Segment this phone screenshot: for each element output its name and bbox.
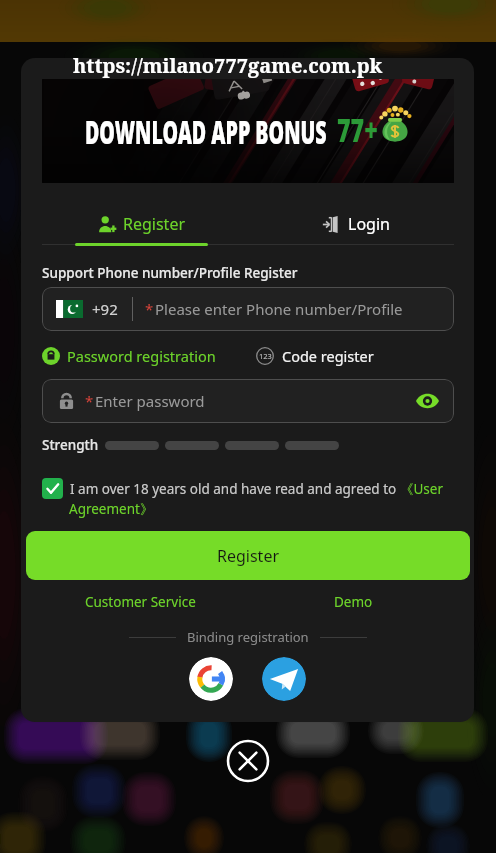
staticText: 《User [400, 480, 444, 498]
staticText: * [85, 391, 94, 411]
button[interactable]: Register [26, 531, 470, 580]
staticText: Register [123, 213, 186, 235]
button[interactable]: * [42, 379, 454, 423]
button[interactable]: Login [248, 203, 454, 244]
staticText: * [145, 299, 154, 319]
staticText: Agreement》 [69, 500, 154, 518]
button[interactable]: I am over 18 years old [42, 478, 63, 499]
staticText: Code register [282, 346, 374, 366]
button[interactable]: Sign up with Google [189, 657, 233, 701]
staticText: https://milano777game.com.pk [73, 52, 383, 79]
staticText: Customer Service [85, 593, 196, 611]
staticText: +92 [92, 299, 118, 319]
staticText: Please enter Phone number/Profile [155, 299, 403, 319]
button[interactable]: Agreement》 [69, 500, 154, 518]
button[interactable]: Download app bonus banner [42, 79, 454, 183]
staticText: Strength [42, 436, 99, 454]
staticText: 77+ [337, 108, 378, 151]
button[interactable]: Customer Service [85, 593, 196, 611]
button[interactable]: +92 [42, 287, 454, 331]
button[interactable]: Close [226, 739, 270, 783]
staticText: I am over 18 years old and have read and… [70, 480, 400, 498]
button[interactable]: Demo [334, 593, 373, 611]
button[interactable]: Register [42, 203, 248, 244]
button[interactable]: 123 [256, 346, 374, 366]
button[interactable]: Password registration [42, 346, 216, 366]
staticText: Register [217, 545, 280, 567]
staticText: Support Phone number/Profile Register [42, 264, 298, 282]
staticText: DOWNLOAD APP BONUS [85, 109, 327, 153]
staticText: 123 [259, 351, 272, 361]
staticText: Password registration [67, 346, 216, 366]
staticText: Enter password [95, 391, 205, 411]
staticText: Binding registration [187, 628, 309, 646]
button[interactable]: Show password [411, 385, 443, 417]
staticText: Demo [334, 593, 373, 611]
staticText: Login [348, 213, 390, 235]
button[interactable]: Sign up with Telegram [262, 657, 306, 701]
button[interactable]: 《User [400, 480, 444, 498]
